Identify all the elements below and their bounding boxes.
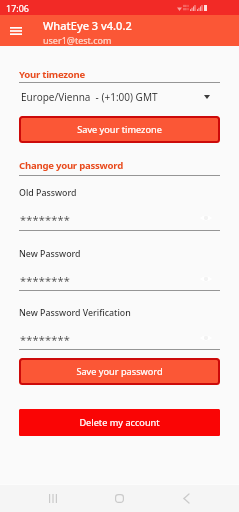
staticText: Change your password [19,159,123,172]
staticText: WhatEye 3 v4.0.2 [43,18,132,33]
button[interactable]: Save your password [19,358,220,385]
staticText: ******** [20,273,71,285]
button[interactable]: Back [173,485,199,511]
button[interactable]: Open navigation drawer [4,19,28,43]
staticText: Save your password [76,365,163,378]
staticText: ******** [20,212,71,224]
staticText: Old Password [19,187,77,199]
staticText: user1@test.com [43,34,112,46]
button[interactable]: Save your timezone [19,116,220,143]
staticText: 17:06 [6,2,30,14]
staticText: New Password Verification [19,307,131,319]
staticText: Save your timezone [77,123,162,136]
staticText: Your timezone [19,68,85,81]
staticText: New Password [19,248,81,260]
button[interactable]: Delete my account [19,409,220,436]
button[interactable]: Recent apps [40,485,66,511]
staticText: Delete my account [79,416,160,429]
button[interactable]: Europe/Vienna - (+1:00) GMT [19,90,220,104]
button[interactable]: Home [106,485,132,511]
staticText: Europe/Vienna - (+1:00) GMT [21,90,158,104]
staticText: ******** [20,332,71,344]
